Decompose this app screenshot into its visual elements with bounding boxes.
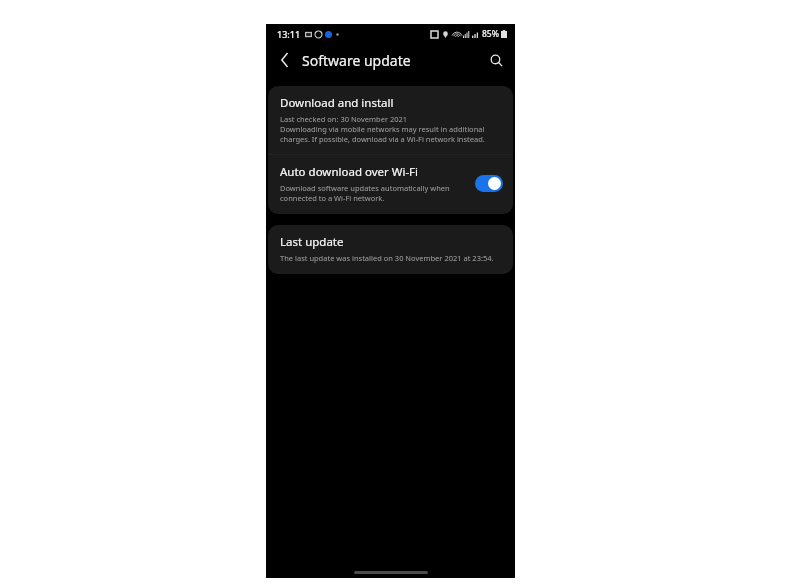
staticText: 85% xyxy=(482,28,499,40)
staticText: Download and install xyxy=(280,95,394,111)
staticText: Last checked on: 30 November 2021 xyxy=(280,114,408,124)
button[interactable]: Download and install xyxy=(268,86,513,154)
staticText: Last update xyxy=(280,234,344,250)
button[interactable]: Back xyxy=(272,47,298,73)
staticText: Software update xyxy=(302,51,411,70)
staticText: 13:11 xyxy=(277,28,301,40)
button[interactable]: Last update xyxy=(268,225,513,274)
staticText: Downloading via mobile networks may resu… xyxy=(280,124,501,144)
staticText: The last update was installed on 30 Nove… xyxy=(280,253,494,263)
staticText: Auto download over Wi-Fi xyxy=(280,164,419,180)
staticText: Download software updates automatically … xyxy=(280,183,467,203)
button[interactable]: Auto download over Wi-Fi xyxy=(268,155,513,214)
button[interactable]: Search xyxy=(483,47,509,73)
button[interactable]: Auto download over Wi-Fi toggle, on xyxy=(475,175,503,192)
